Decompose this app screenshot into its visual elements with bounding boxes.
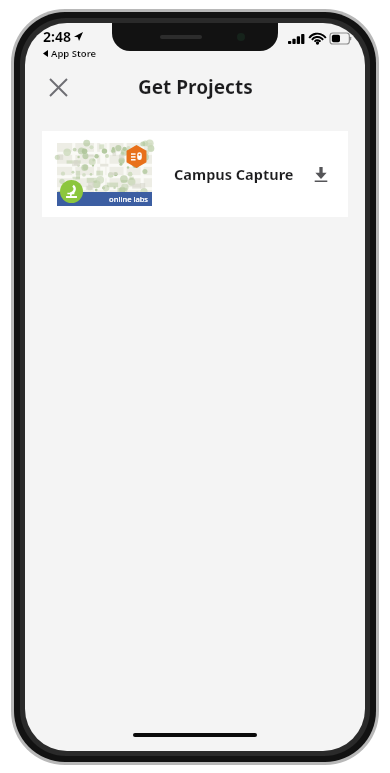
staticText: App Store xyxy=(51,47,97,60)
staticText: 2:48 xyxy=(43,27,71,46)
staticText: Campus Capture xyxy=(174,164,301,184)
button[interactable]: Download xyxy=(301,154,341,194)
staticText: online labs xyxy=(109,194,148,204)
button[interactable]: Close xyxy=(38,67,78,107)
button[interactable]: online labs xyxy=(42,131,348,217)
staticText: Get Projects xyxy=(138,74,253,100)
